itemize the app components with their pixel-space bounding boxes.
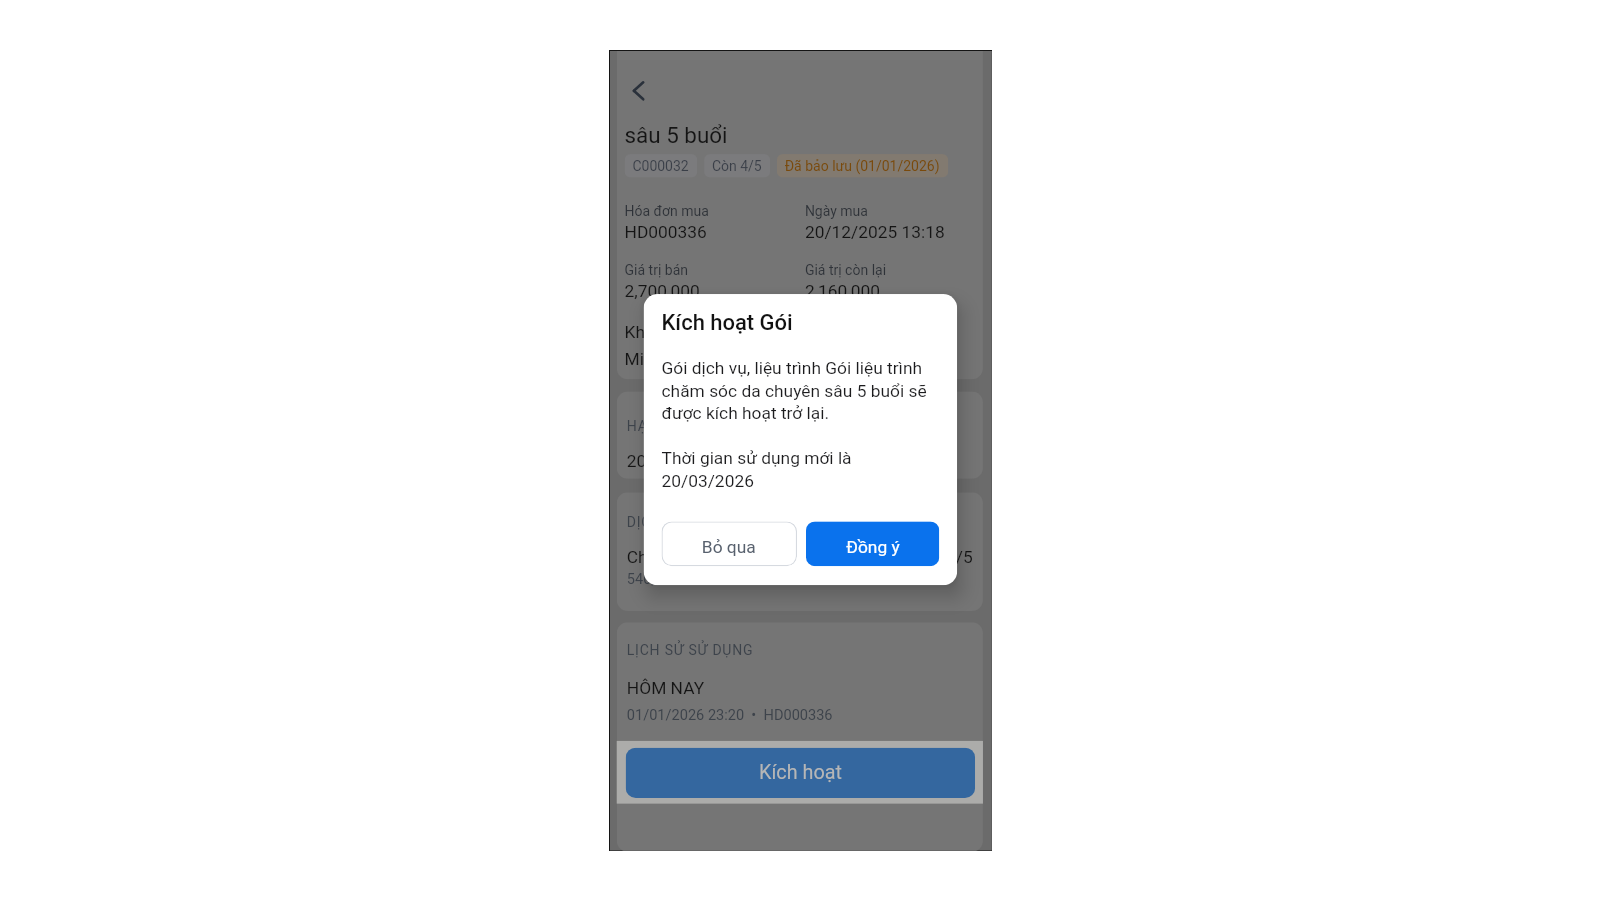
button[interactable]: Back bbox=[616, 68, 660, 113]
button[interactable]: Chăm sóc da chuyên sâu bbox=[627, 547, 973, 587]
staticText: 01/01/2026 23:20 • HD000336 bbox=[627, 706, 833, 723]
staticText: sâu 5 buổi bbox=[625, 122, 728, 147]
staticText: 2,160,000 bbox=[805, 282, 881, 302]
button[interactable]: Đồng ý bbox=[806, 521, 939, 566]
staticText: C000032 bbox=[632, 157, 689, 174]
staticText: Đã bảo lưu (01/01/2026) bbox=[785, 157, 940, 174]
staticText: HẠN SỬ DỤNG bbox=[627, 417, 728, 434]
staticText: Chăm sóc da chuyên sâu bbox=[627, 547, 821, 567]
staticText: Ngày mua bbox=[805, 202, 869, 219]
staticText: 20/03/2026 bbox=[627, 451, 720, 471]
button[interactable]: Kích hoạt bbox=[626, 748, 975, 798]
staticText: HD000336 bbox=[625, 222, 707, 243]
staticText: 20/12/2025 13:18 bbox=[805, 222, 945, 243]
staticText: 540,000 bbox=[627, 571, 679, 587]
staticText: LỊCH SỬ SỬ DỤNG bbox=[627, 641, 753, 658]
staticText: Minh Anh Nguyễn bbox=[625, 349, 761, 369]
staticText: Gói dịch vụ, liệu trình Gói liệu trình c… bbox=[661, 358, 939, 491]
staticText: 4/5 bbox=[946, 547, 973, 567]
staticText: 2,700,000 bbox=[625, 282, 701, 302]
staticText: HÔM NAY bbox=[627, 678, 705, 698]
staticText: Kích hoạt Gói bbox=[661, 310, 794, 335]
staticText: DỊCH VỤ TRONG GÓI bbox=[627, 514, 770, 530]
staticText: Hóa đơn mua bbox=[625, 202, 710, 219]
button[interactable]: Bỏ qua bbox=[661, 521, 797, 566]
staticText: Bỏ qua bbox=[702, 537, 757, 557]
staticText: Đồng ý bbox=[846, 537, 900, 557]
staticText: Còn 4/5 bbox=[712, 157, 762, 174]
staticText: Giá trị còn lại bbox=[805, 262, 887, 278]
staticText: Giá trị bán bbox=[625, 262, 688, 278]
staticText: Kích hoạt bbox=[759, 761, 843, 785]
staticText: Khách hàng bbox=[625, 322, 716, 342]
